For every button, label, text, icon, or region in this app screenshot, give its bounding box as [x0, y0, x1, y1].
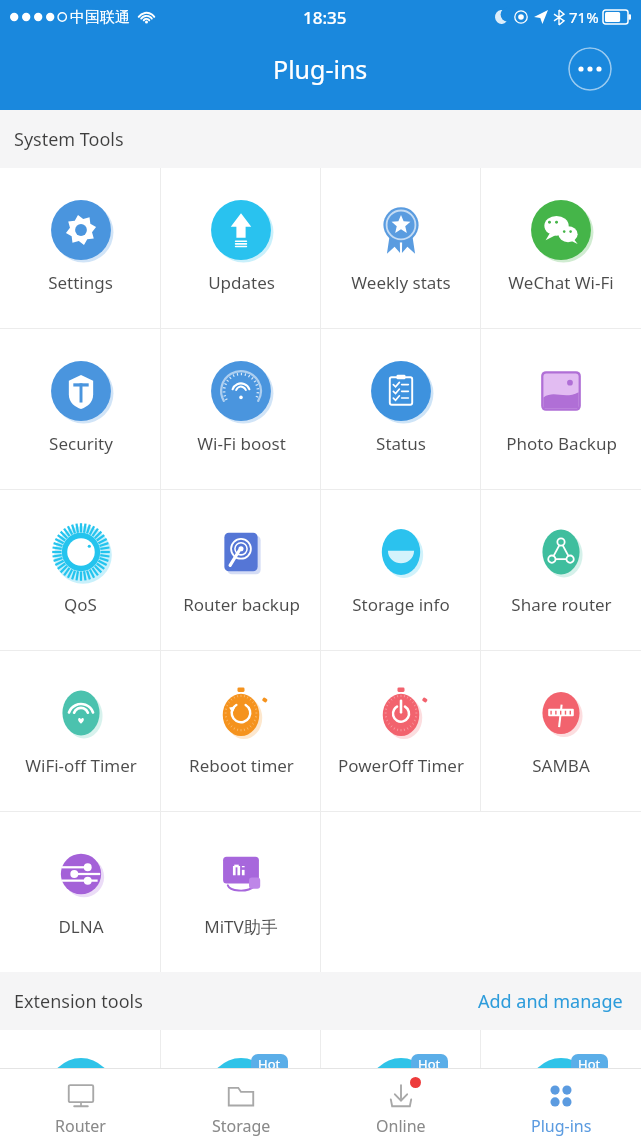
- staticText: MiTV助手: [204, 915, 278, 938]
- staticText: Security: [49, 432, 113, 455]
- button[interactable]: More options: [568, 47, 612, 91]
- staticText: Online: [376, 1115, 426, 1137]
- staticText: Add and manage: [478, 989, 623, 1014]
- staticText: Hot: [258, 1055, 281, 1073]
- staticText: Plug-ins: [273, 52, 368, 86]
- staticText: Share router: [511, 593, 612, 616]
- button[interactable]: Photo Backup: [481, 329, 641, 489]
- staticText: PowerOff Timer: [338, 754, 464, 777]
- staticText: Hot: [418, 1055, 441, 1073]
- staticText: Status: [376, 432, 426, 455]
- button[interactable]: WiFi-off Timer: [0, 651, 161, 811]
- button[interactable]: Add and manage: [474, 985, 627, 1018]
- staticText: Wi-Fi boost: [197, 432, 286, 455]
- button[interactable]: Wi-Fi boost: [161, 329, 321, 489]
- button[interactable]: Router: [0, 1069, 161, 1140]
- staticText: Storage: [212, 1115, 271, 1137]
- staticText: DLNA: [58, 915, 104, 938]
- staticText: 18:35: [303, 6, 347, 29]
- staticText: Storage info: [352, 593, 450, 616]
- button[interactable]: SAMBA: [481, 651, 641, 811]
- staticText: Updates: [208, 271, 275, 294]
- staticText: Photo Backup: [506, 432, 617, 455]
- staticText: Hot: [578, 1055, 601, 1073]
- button[interactable]: Hot: [321, 1030, 481, 1140]
- staticText: Router: [55, 1115, 106, 1137]
- button[interactable]: Hot: [481, 1030, 641, 1140]
- button[interactable]: [0, 1030, 161, 1140]
- button[interactable]: Weekly stats: [321, 168, 481, 328]
- button[interactable]: Storage: [161, 1069, 321, 1140]
- button[interactable]: PowerOff Timer: [321, 651, 481, 811]
- button[interactable]: MiTV助手: [161, 812, 321, 972]
- button[interactable]: DLNA: [0, 812, 161, 972]
- button[interactable]: Reboot timer: [161, 651, 321, 811]
- staticText: System Tools: [14, 127, 124, 152]
- button[interactable]: QoS: [0, 490, 161, 650]
- staticText: Plug-ins: [531, 1115, 592, 1137]
- staticText: Router backup: [183, 593, 300, 616]
- button[interactable]: Storage info: [321, 490, 481, 650]
- button[interactable]: Online: [321, 1069, 481, 1140]
- staticText: WeChat Wi-Fi: [508, 271, 614, 294]
- button[interactable]: Router backup: [161, 490, 321, 650]
- button[interactable]: Status: [321, 329, 481, 489]
- staticText: 71%: [569, 7, 599, 27]
- button[interactable]: Security: [0, 329, 161, 489]
- button[interactable]: Hot: [161, 1030, 321, 1140]
- button[interactable]: Share router: [481, 490, 641, 650]
- staticText: 中国联通: [70, 8, 130, 27]
- staticText: Reboot timer: [189, 754, 294, 777]
- button[interactable]: WeChat Wi-Fi: [481, 168, 641, 328]
- staticText: Settings: [48, 271, 113, 294]
- button[interactable]: Plug-ins: [481, 1069, 641, 1140]
- staticText: Extension tools: [14, 989, 143, 1014]
- button[interactable]: Updates: [161, 168, 321, 328]
- staticText: QoS: [64, 593, 97, 616]
- staticText: Weekly stats: [351, 271, 451, 294]
- staticText: SAMBA: [532, 754, 590, 777]
- staticText: WiFi-off Timer: [25, 754, 137, 777]
- button[interactable]: Settings: [0, 168, 161, 328]
